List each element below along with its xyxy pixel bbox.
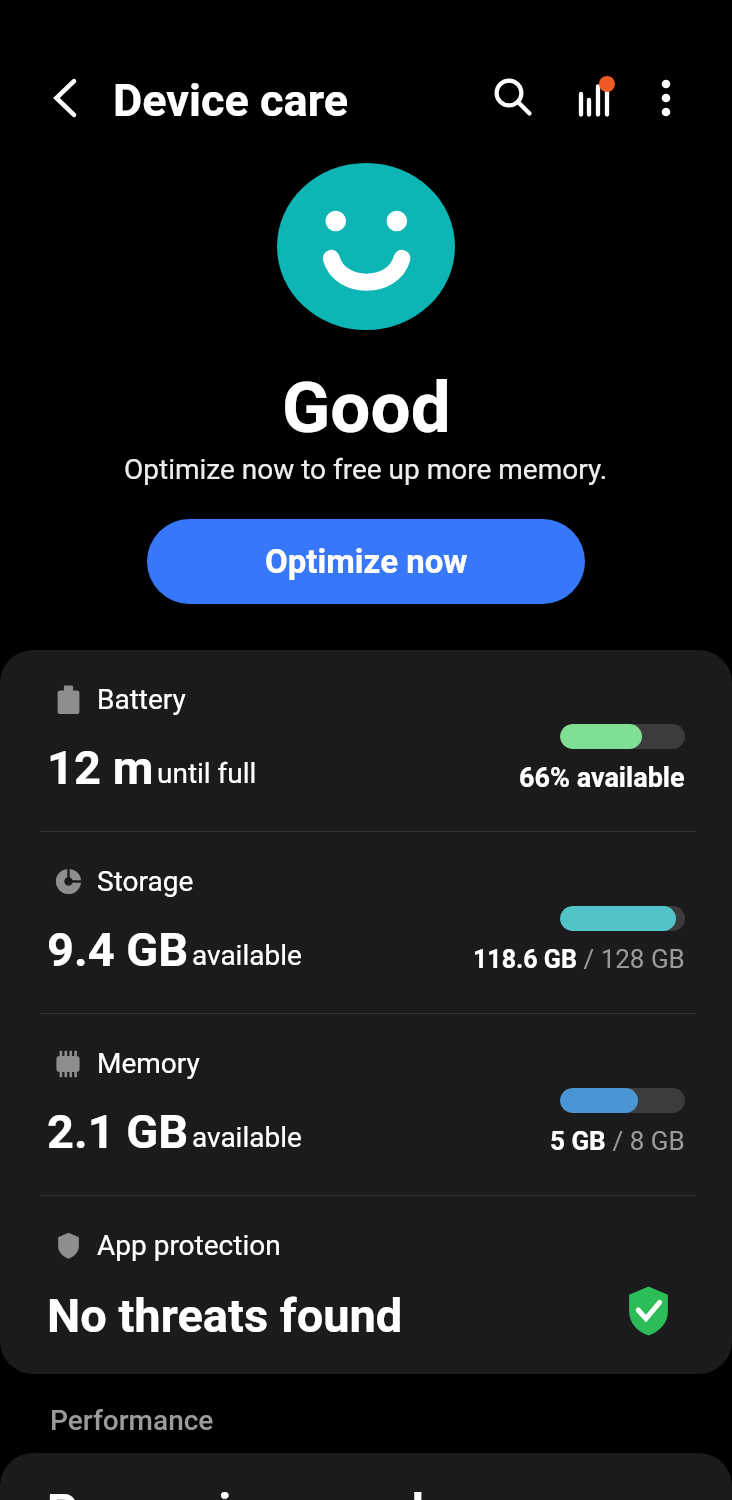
staticText: 12 m (47, 740, 154, 795)
button[interactable]: Storage (0, 832, 732, 1013)
staticText: Optimize now (265, 542, 468, 581)
staticText: 5 GB (550, 1126, 606, 1156)
staticText: 118.6 GB (473, 945, 577, 974)
staticText: Storage (97, 865, 194, 898)
staticText: Processing speed (47, 1483, 424, 1500)
staticText: 66% available (519, 762, 685, 794)
staticText: available (192, 939, 302, 972)
staticText: 2.1 GB (47, 1104, 189, 1159)
button[interactable]: Back (42, 74, 90, 122)
staticText: Good (282, 366, 451, 449)
staticText: App protection (97, 1229, 281, 1262)
staticText: until full (157, 757, 257, 790)
button[interactable]: Memory (0, 1014, 732, 1195)
button[interactable]: Diagnostics (564, 64, 622, 122)
staticText: Memory (97, 1047, 200, 1080)
staticText: / 128 GB (577, 944, 685, 974)
button[interactable]: Optimize now (147, 519, 585, 604)
staticText: Battery (97, 683, 186, 716)
button[interactable]: More options (637, 69, 695, 127)
staticText: Device care (113, 74, 348, 127)
staticText: No threats found (47, 1288, 403, 1343)
staticText: available (192, 1121, 302, 1154)
staticText: 9.4 GB (47, 922, 189, 977)
button[interactable]: App protection (0, 1196, 732, 1374)
staticText: Performance (50, 1404, 214, 1437)
staticText: / 8 GB (606, 1126, 685, 1156)
button[interactable]: Processing speed (0, 1453, 732, 1500)
staticText: Optimize now to free up more memory. (124, 453, 608, 486)
button[interactable]: Battery (0, 650, 732, 831)
button[interactable]: Search (485, 69, 543, 127)
